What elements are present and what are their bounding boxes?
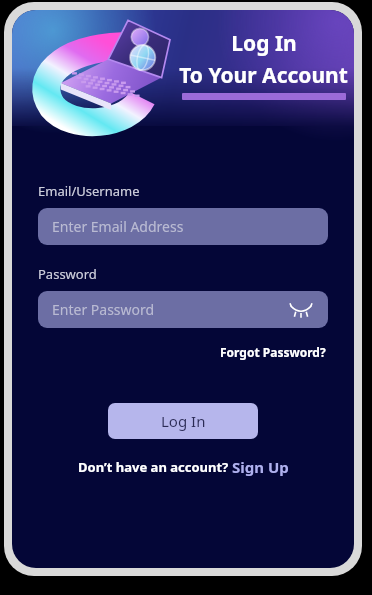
staticText: Enter Email Address <box>52 217 184 236</box>
staticText: Enter Password <box>52 300 155 319</box>
button[interactable]: Sign Up <box>232 457 289 477</box>
staticText: Forgot Password? <box>220 344 326 360</box>
staticText: To Your Account <box>179 61 348 90</box>
button[interactable]: Enter Password <box>38 291 328 328</box>
staticText: Log In <box>161 411 206 431</box>
button[interactable]: Log In <box>108 403 258 439</box>
button[interactable]: Enter Email Address <box>38 208 328 245</box>
staticText: Log In <box>231 29 297 58</box>
staticText: Password <box>38 265 97 283</box>
button[interactable]: Show password <box>288 297 314 323</box>
staticText: Email/Username <box>38 182 140 200</box>
button[interactable]: Forgot Password? <box>218 342 328 362</box>
staticText: Don’t have an account? <box>78 458 232 476</box>
staticText: Sign Up <box>232 457 289 477</box>
